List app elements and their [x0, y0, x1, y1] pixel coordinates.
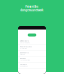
staticText: Secure · 5 GHz — [20, 42, 30, 44]
staticText: 14 connected — [20, 59, 30, 61]
staticText: None today — [20, 65, 28, 67]
staticText: Prevent the — [25, 5, 39, 8]
staticText: 2 found — [20, 53, 25, 55]
button[interactable]: Router access — [18, 45, 46, 51]
staticText: Threats — [20, 64, 27, 65]
button[interactable]: Open ports — [18, 51, 46, 57]
button[interactable]: Threats — [18, 63, 46, 68]
button[interactable]: Wi-Fi network — [18, 39, 46, 45]
staticText: Open ports — [20, 52, 29, 54]
button[interactable]: Devices — [18, 57, 46, 63]
staticText: Wi-Fi network — [20, 40, 29, 42]
staticText: Protected — [20, 48, 27, 49]
staticText: Devices — [20, 58, 26, 59]
staticText: dangerous network — [20, 8, 44, 12]
staticText: Router access — [20, 46, 32, 48]
